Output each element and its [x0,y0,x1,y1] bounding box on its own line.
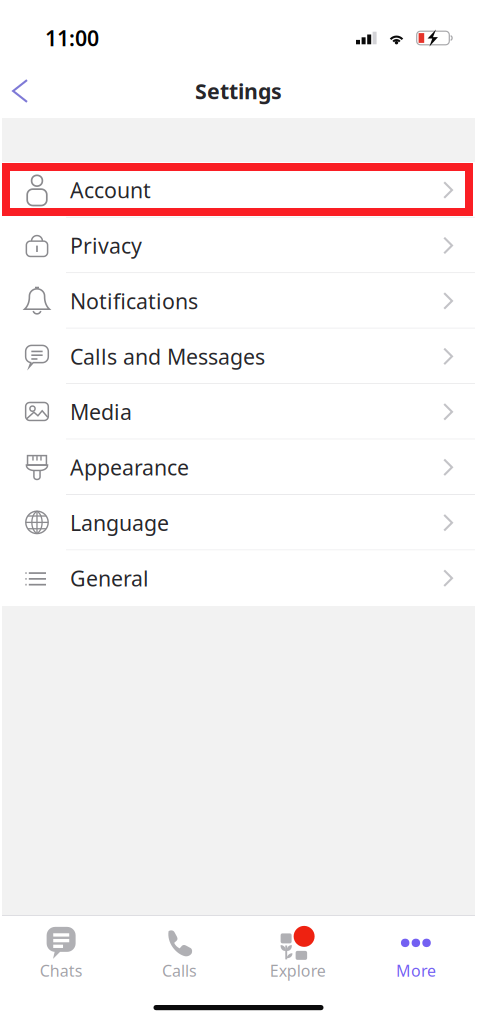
staticText: Privacy [70,231,142,260]
button[interactable]: General [2,550,475,606]
button[interactable]: Calls [120,916,238,988]
button[interactable]: Chats [2,916,120,988]
staticText: Account [70,176,151,204]
staticText: Chats [40,960,83,981]
staticText: Appearance [70,453,189,481]
staticText: More [396,960,436,981]
staticText: Notifications [70,287,198,315]
button[interactable]: More [357,916,475,988]
button[interactable]: Media [2,384,475,440]
staticText: General [70,564,149,592]
button[interactable]: Explore [238,916,357,988]
staticText: 11:00 [45,24,99,52]
button[interactable]: Account [2,162,475,218]
button[interactable]: Back [2,69,40,113]
button[interactable]: Language [2,495,475,550]
button[interactable]: Calls and Messages [2,329,475,384]
button[interactable]: Notifications [2,273,475,329]
staticText: Media [70,398,132,426]
staticText: Calls and Messages [70,342,265,370]
staticText: Calls [162,960,197,981]
button[interactable]: Appearance [2,440,475,495]
staticText: Explore [270,960,326,981]
staticText: Language [70,509,169,537]
staticText: Settings [195,77,282,105]
button[interactable]: Privacy [2,218,475,273]
